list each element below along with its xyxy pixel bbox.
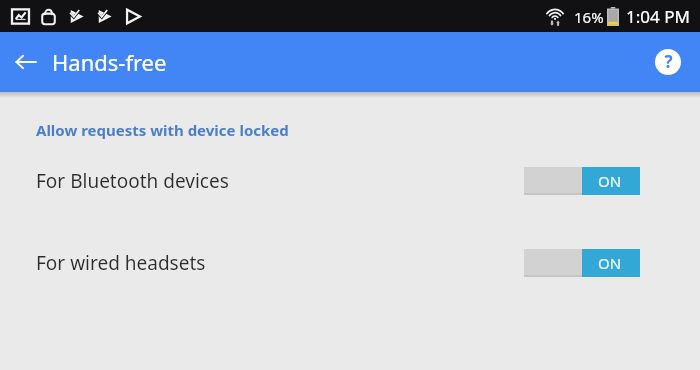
- staticText: For wired headsets: [36, 250, 206, 276]
- button[interactable]: For Bluetooth devices: [0, 163, 700, 199]
- staticText: ON: [598, 253, 622, 273]
- staticText: 16%: [574, 7, 604, 27]
- button[interactable]: For wired headsets: [0, 245, 700, 281]
- staticText: ?: [664, 50, 673, 73]
- button[interactable]: Help: [648, 42, 688, 82]
- button[interactable]: Back: [4, 40, 48, 84]
- staticText: 1:04 PM: [626, 5, 690, 28]
- button[interactable]: Toggle on: [524, 249, 640, 277]
- button[interactable]: Toggle on: [524, 167, 640, 195]
- staticText: ON: [598, 171, 622, 191]
- staticText: For Bluetooth devices: [36, 168, 229, 194]
- staticText: Allow requests with device locked: [36, 120, 289, 140]
- staticText: Hands-free: [52, 47, 167, 77]
